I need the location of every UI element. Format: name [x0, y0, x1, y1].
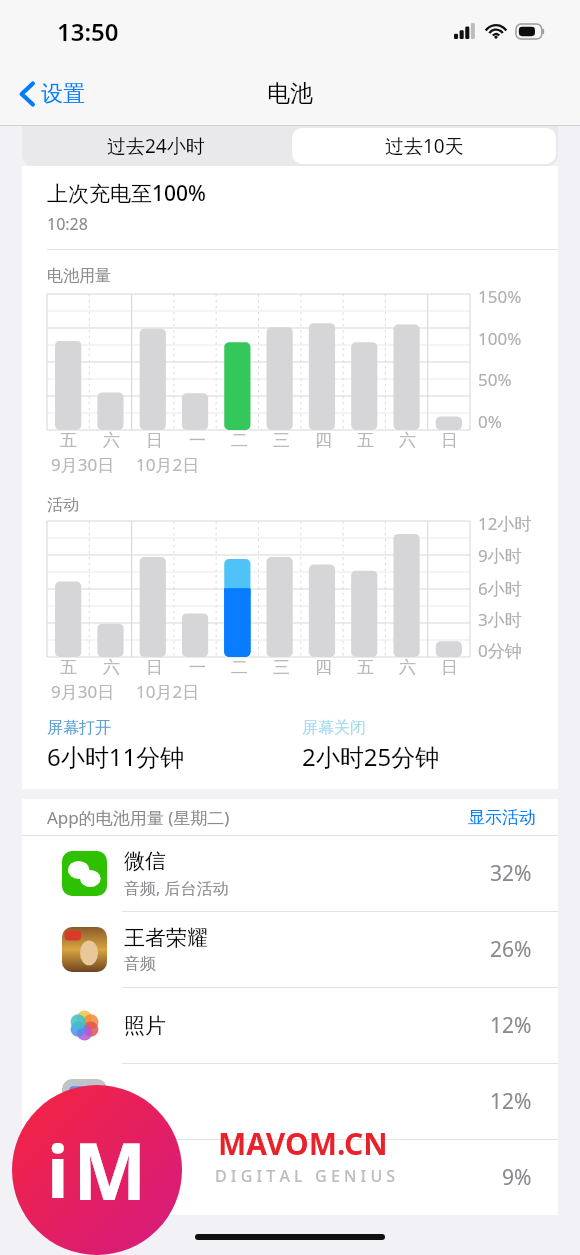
- staticText: 设置: [41, 80, 85, 108]
- staticText: 50%: [478, 368, 512, 391]
- staticText: 13:50: [57, 15, 119, 48]
- button[interactable]: 9%: [22, 1140, 558, 1215]
- staticText: 26%: [490, 935, 532, 964]
- staticText: 0分钟: [478, 639, 522, 662]
- staticText: 王者荣耀: [124, 925, 208, 951]
- staticText: 一: [189, 657, 206, 678]
- staticText: 6小时: [478, 577, 522, 600]
- staticText: 屏幕打开: [47, 718, 111, 738]
- button[interactable]: 显示活动: [468, 807, 536, 828]
- staticText: 100%: [478, 327, 522, 350]
- staticText: 过去24小时: [107, 133, 205, 159]
- button[interactable]: 王者荣耀: [22, 912, 558, 987]
- staticText: 12小时: [478, 512, 532, 535]
- staticText: 显示活动: [468, 807, 536, 828]
- staticText: i: [47, 1121, 69, 1219]
- staticText: 日: [441, 657, 458, 678]
- staticText: 二: [231, 430, 248, 451]
- button[interactable]: 过去10天: [292, 128, 556, 164]
- staticText: D I G I T A L G E N I U S: [215, 1165, 396, 1187]
- staticText: 日: [441, 430, 458, 451]
- staticText: 0%: [478, 410, 502, 433]
- staticText: 活动: [47, 495, 79, 515]
- staticText: 9月30日: [51, 453, 115, 476]
- button[interactable]: 过去24小时: [22, 126, 290, 166]
- staticText: 10月2日: [136, 680, 200, 703]
- staticText: 一: [189, 430, 206, 451]
- staticText: 上次充电至100%: [47, 179, 206, 208]
- staticText: 日: [146, 430, 163, 451]
- staticText: M: [73, 1117, 147, 1223]
- staticText: 9%: [502, 1163, 532, 1192]
- button[interactable]: 微信: [22, 836, 558, 911]
- staticText: 6小时11分钟: [47, 740, 185, 773]
- staticText: 五: [357, 430, 374, 451]
- staticText: 12%: [490, 1087, 532, 1116]
- staticText: 12%: [490, 1011, 532, 1040]
- staticText: 六: [399, 430, 416, 451]
- staticText: 微信: [124, 848, 166, 874]
- staticText: 四: [315, 657, 332, 678]
- staticText: 9月30日: [51, 680, 115, 703]
- staticText: 3小时: [478, 608, 522, 631]
- staticText: 日: [146, 657, 163, 678]
- staticText: 音频, 后台活动: [124, 877, 229, 899]
- staticText: 9小时: [478, 544, 522, 567]
- staticText: 二: [231, 657, 248, 678]
- button[interactable]: 12%: [22, 1064, 558, 1139]
- staticText: 六: [103, 430, 120, 451]
- staticText: 六: [103, 657, 120, 678]
- staticText: 四: [315, 430, 332, 451]
- staticText: 五: [60, 430, 77, 451]
- staticText: 过去10天: [385, 133, 464, 159]
- staticText: 三: [273, 657, 290, 678]
- staticText: 音频: [124, 954, 156, 974]
- staticText: 32%: [490, 859, 532, 888]
- staticText: 电池: [267, 79, 313, 108]
- staticText: App的电池用量 (星期二): [47, 806, 468, 829]
- button[interactable]: 照片: [22, 988, 558, 1063]
- staticText: 六: [399, 657, 416, 678]
- staticText: 10:28: [47, 213, 88, 235]
- staticText: MAVOM.CN: [218, 1123, 388, 1164]
- staticText: 2小时25分钟: [302, 740, 440, 773]
- staticText: 屏幕关闭: [302, 718, 366, 738]
- staticText: 照片: [124, 1013, 166, 1039]
- button[interactable]: 设置: [14, 74, 91, 114]
- staticText: 10月2日: [136, 453, 200, 476]
- staticText: 三: [273, 430, 290, 451]
- staticText: 150%: [478, 285, 522, 308]
- staticText: 五: [357, 657, 374, 678]
- staticText: 五: [60, 657, 77, 678]
- staticText: 电池用量: [47, 266, 111, 286]
